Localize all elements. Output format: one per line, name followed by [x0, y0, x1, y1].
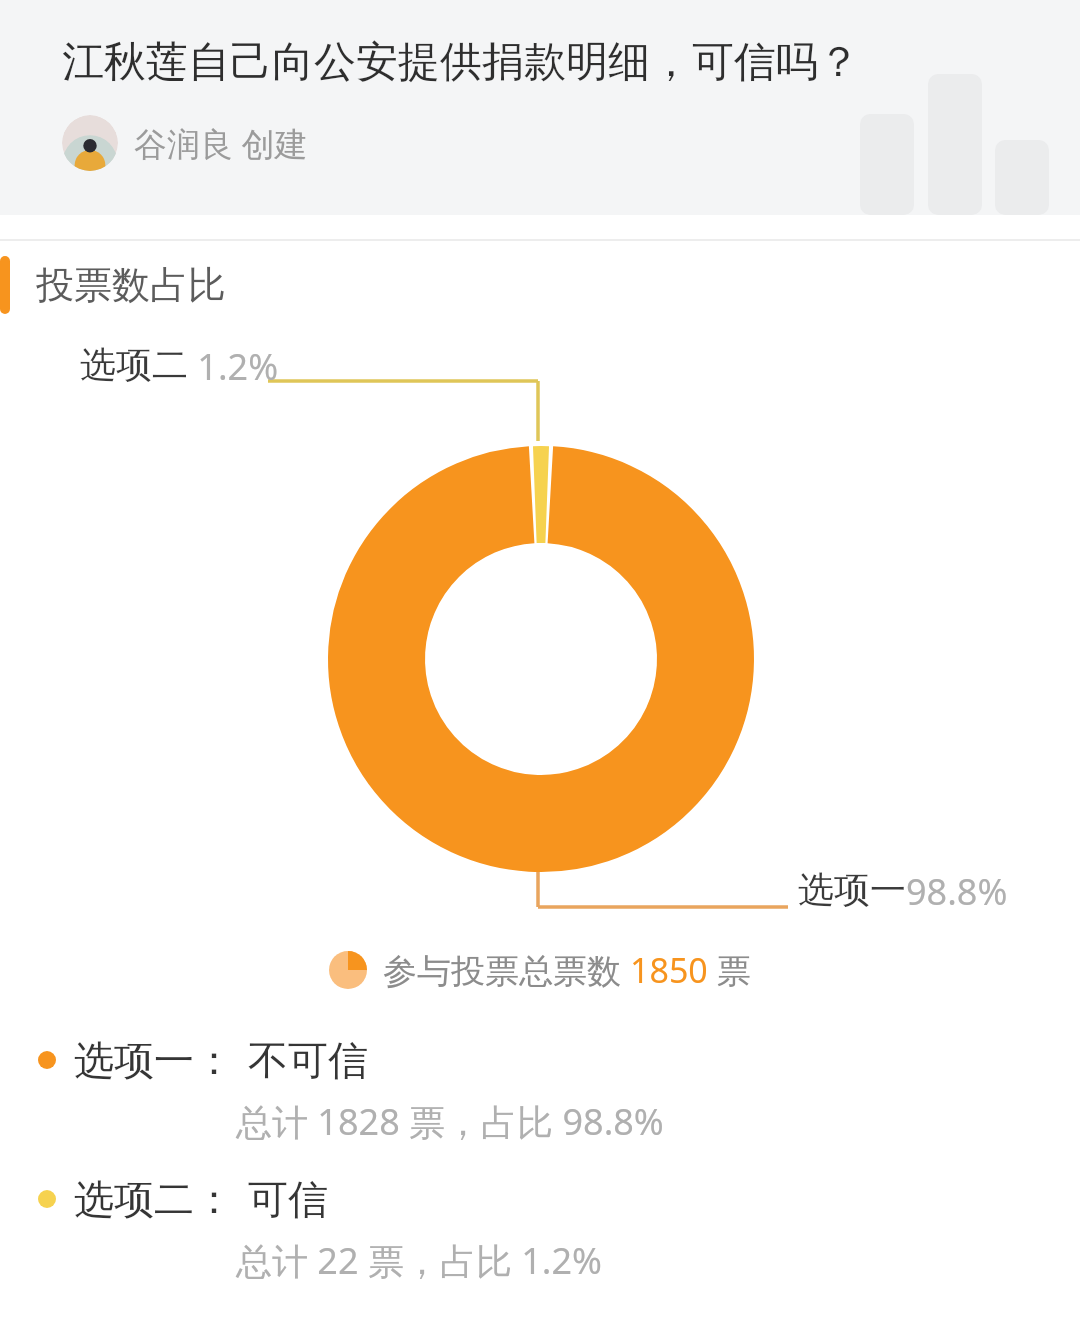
other: Total votes [329, 951, 367, 989]
staticText: 票 [708, 947, 751, 993]
staticText: 1.2% [188, 342, 279, 391]
staticText: 谷润良 创建 [134, 121, 308, 166]
staticText: 1850 [630, 947, 708, 993]
staticText: 可信 [248, 1174, 328, 1224]
other: User avatar [62, 115, 118, 171]
staticText: 投票数占比 [36, 261, 226, 309]
button[interactable]: 选项一： [0, 1035, 1080, 1146]
staticText: 参与投票总票数 [383, 947, 630, 993]
staticText: 总计 1828 票，占比 98.8% [236, 1097, 664, 1146]
staticText: 选项二： [74, 1174, 234, 1224]
staticText: 98.8% [906, 867, 1008, 916]
button[interactable]: 选项二： [0, 1174, 1080, 1285]
staticText: 选项二 [80, 342, 188, 387]
staticText: 不可信 [248, 1035, 368, 1085]
staticText: 江秋莲自己向公安提供捐款明细，可信吗？ [62, 36, 860, 89]
staticText: 选项一： [74, 1035, 234, 1085]
staticText: 选项一 [798, 867, 906, 912]
button[interactable]: 江秋莲自己向公安提供捐款明细，可信吗？ [0, 0, 1080, 215]
staticText: 总计 22 票，占比 1.2% [236, 1236, 603, 1285]
